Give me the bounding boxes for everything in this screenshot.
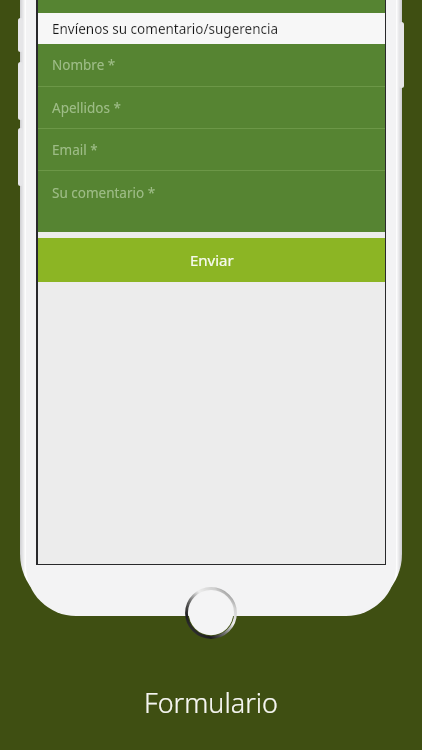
staticText: Envíenos su comentario/sugerencia bbox=[52, 20, 279, 38]
staticText: Enviar bbox=[190, 250, 234, 270]
button[interactable]: Nombre * bbox=[38, 44, 385, 86]
staticText: Apellidos * bbox=[52, 99, 121, 117]
staticText: Email * bbox=[52, 141, 98, 159]
staticText: Formulario bbox=[0, 684, 422, 721]
button[interactable]: Apellidos * bbox=[38, 87, 385, 128]
staticText: Nombre * bbox=[52, 56, 116, 74]
button[interactable]: Su comentario * bbox=[38, 171, 385, 232]
button[interactable]: Enviar bbox=[38, 238, 385, 282]
button[interactable]: Email * bbox=[38, 129, 385, 170]
staticText: Su comentario * bbox=[52, 184, 156, 202]
button[interactable]: Home bbox=[185, 587, 237, 639]
